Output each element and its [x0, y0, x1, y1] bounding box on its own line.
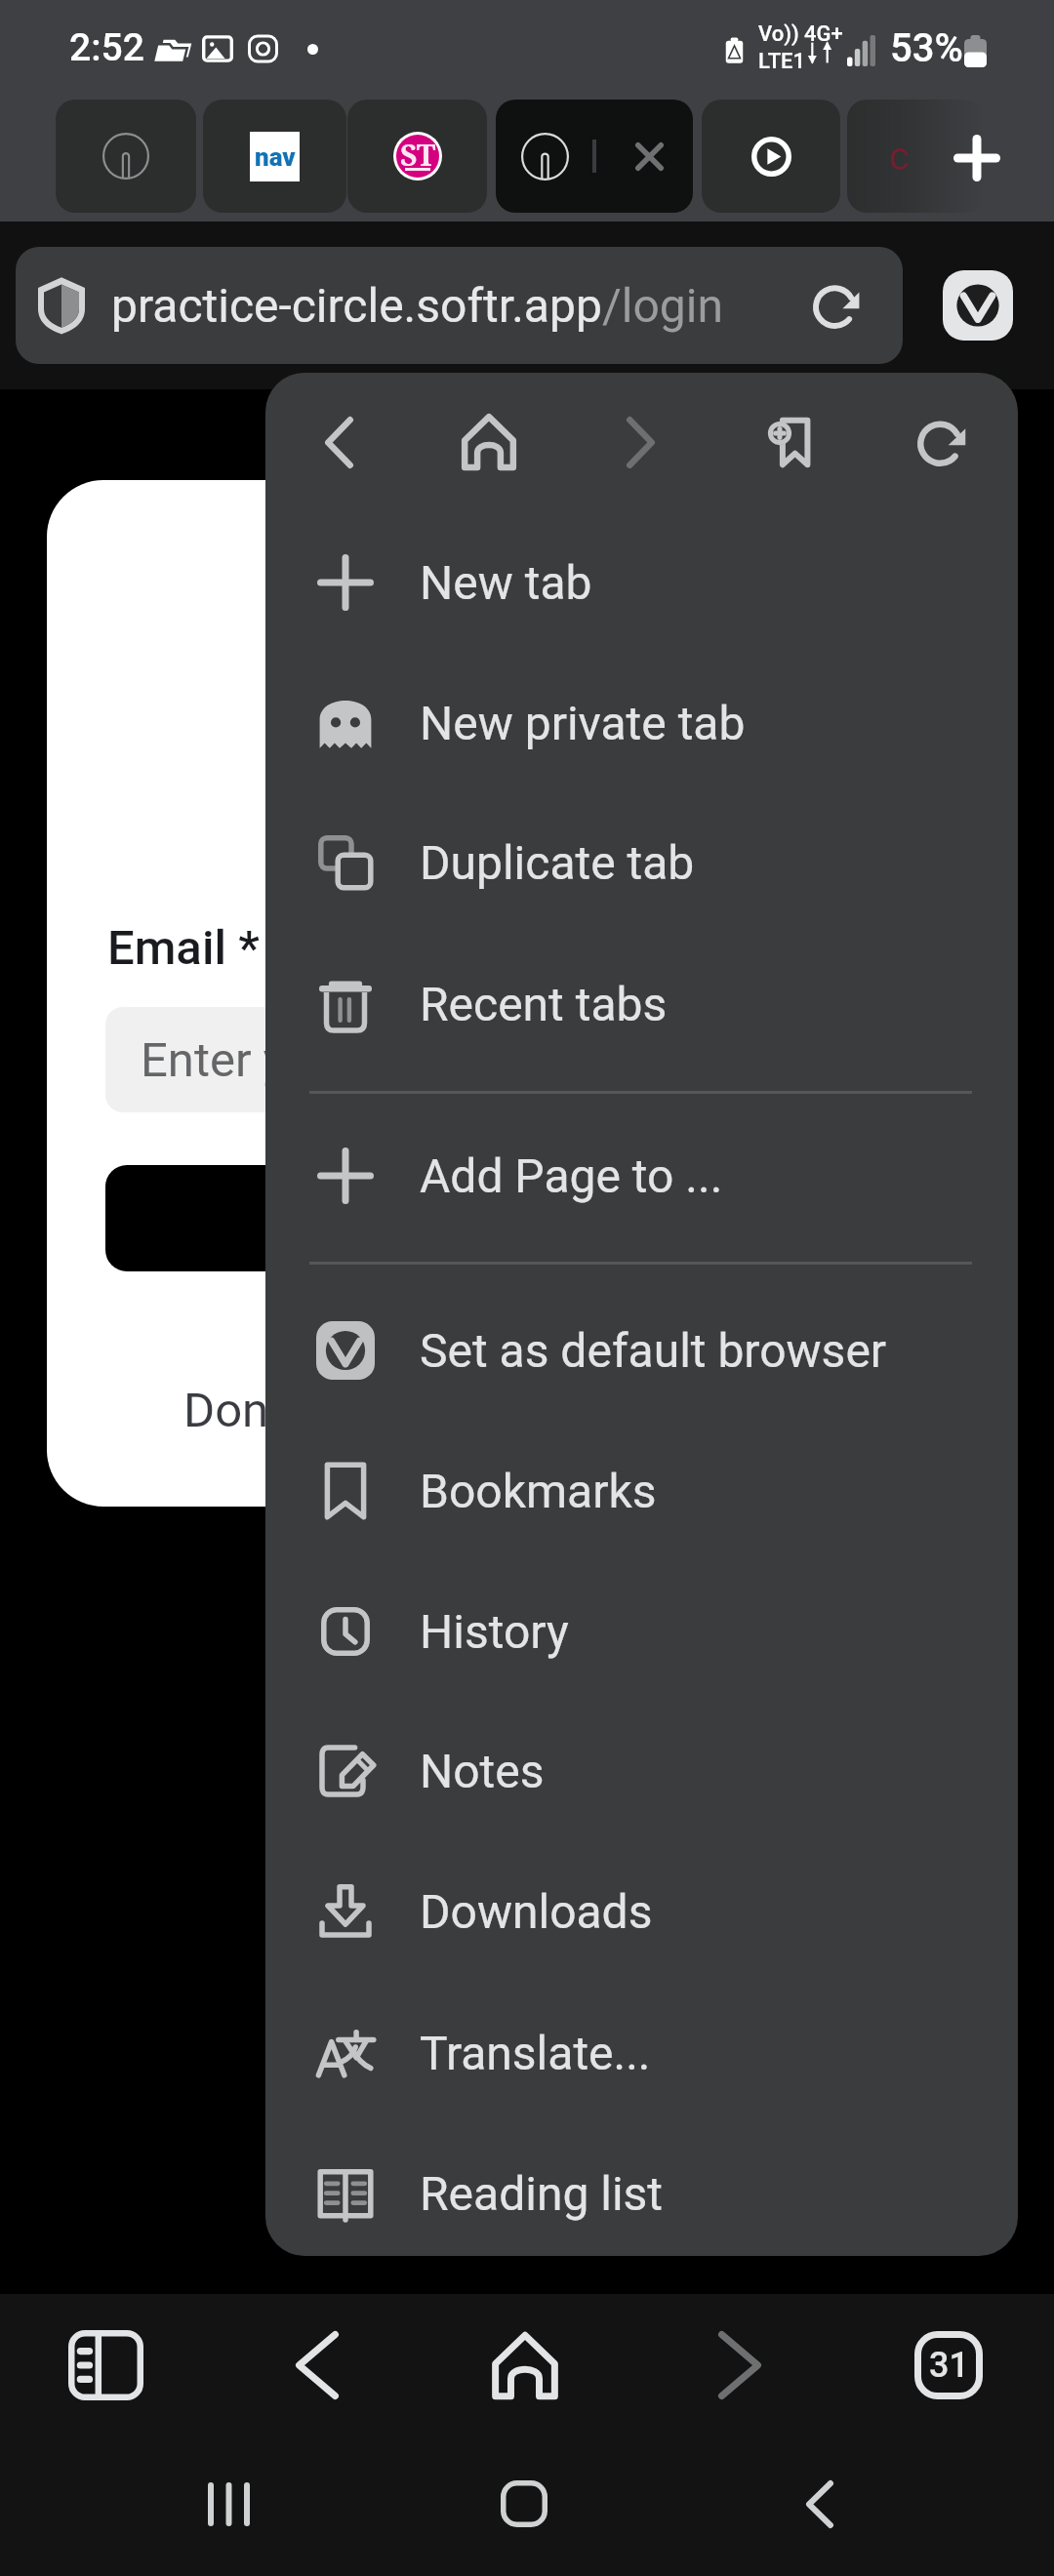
button[interactable]: Back	[766, 2450, 873, 2557]
button[interactable]	[702, 100, 840, 213]
button[interactable]: c	[847, 100, 986, 213]
staticText: New tab	[420, 555, 592, 610]
button[interactable]	[56, 100, 196, 213]
button[interactable]: Reading list	[265, 2123, 1018, 2256]
button[interactable]: Add Page to ...	[265, 1106, 1018, 1246]
button[interactable]: Set as default browser	[265, 1280, 1018, 1421]
staticText: Reading list	[420, 2166, 664, 2221]
button[interactable]: practice-circle.softr.app	[16, 247, 903, 364]
button[interactable]: Translate...	[265, 1983, 1018, 2123]
staticText: Set as default browser	[420, 1323, 887, 1378]
button[interactable]: Notes	[265, 1701, 1018, 1841]
button[interactable]: Forward	[582, 383, 699, 501]
staticText: Bookmarks	[420, 1464, 657, 1518]
staticText: Recent tabs	[420, 977, 668, 1031]
staticText: /login	[602, 278, 723, 333]
staticText: 31	[929, 2345, 969, 2386]
staticText: nav	[255, 142, 296, 172]
staticText: 53%	[890, 25, 963, 71]
button[interactable]: Bookmarks	[265, 1421, 1018, 1561]
button[interactable]: Reload	[883, 383, 1000, 501]
staticText: LTE1	[758, 49, 806, 74]
staticText: Vo))	[758, 21, 799, 47]
button[interactable]: New tab	[930, 111, 1024, 205]
staticText: c	[889, 134, 910, 180]
staticText: Enter your email	[141, 1032, 484, 1088]
button[interactable]: New tab	[265, 512, 1018, 653]
button[interactable]: Reload	[806, 275, 867, 336]
button[interactable]	[496, 100, 693, 213]
staticText: Add Page to ...	[420, 1148, 723, 1203]
staticText: Don't have an account?	[183, 1383, 673, 1438]
staticText: Notes	[420, 1744, 545, 1798]
button[interactable]: Tabs	[895, 2312, 1002, 2419]
button[interactable]: History	[265, 1561, 1018, 1702]
button[interactable]: Home	[430, 383, 547, 501]
button[interactable]: Recent tabs	[265, 934, 1018, 1074]
button[interactable]: Duplicate tab	[265, 792, 1018, 933]
button[interactable]: ST	[347, 100, 487, 213]
button[interactable]: Home	[471, 2312, 579, 2419]
staticText: Duplicate tab	[420, 835, 695, 890]
button[interactable]: Back	[263, 2312, 371, 2419]
button[interactable]: Home	[470, 2450, 578, 2557]
button[interactable]: Recent apps	[175, 2450, 282, 2557]
button[interactable]: New private tab	[265, 653, 1018, 793]
staticText: ST	[400, 135, 436, 175]
button[interactable]: Panels	[52, 2312, 159, 2419]
staticText: New private tab	[420, 696, 746, 750]
staticText: Email *	[107, 920, 260, 976]
button[interactable]: Back	[280, 383, 397, 501]
staticText: practice-circle.softr.app	[111, 278, 602, 333]
button[interactable]: Forward	[686, 2312, 793, 2419]
staticText: Translate...	[420, 2026, 651, 2080]
button[interactable]: nav	[203, 100, 346, 213]
staticText: History	[420, 1604, 569, 1659]
staticText: 4G+	[804, 21, 843, 47]
staticText: Downloads	[420, 1884, 653, 1939]
button[interactable]: Add bookmark	[732, 383, 849, 501]
staticText: 2:52	[69, 25, 144, 70]
button[interactable]: Downloads	[265, 1841, 1018, 1982]
button[interactable]: Vivaldi menu	[943, 270, 1013, 341]
